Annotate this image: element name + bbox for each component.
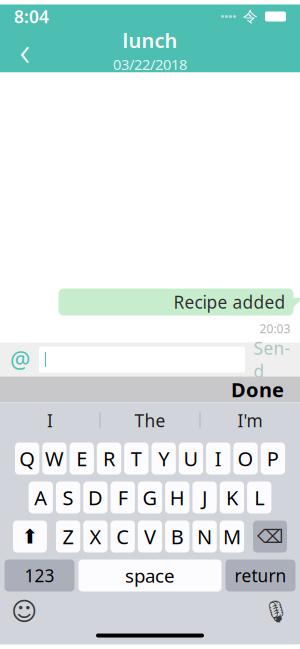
button[interactable]: J bbox=[192, 481, 217, 513]
staticText: The bbox=[134, 409, 165, 432]
button[interactable]: Y bbox=[151, 442, 176, 474]
button[interactable]: F bbox=[110, 481, 135, 513]
staticText: I bbox=[215, 445, 222, 472]
button[interactable]: I bbox=[206, 442, 230, 474]
button[interactable]: Z bbox=[56, 520, 80, 552]
staticText: Done bbox=[231, 376, 284, 403]
staticText: I'm bbox=[237, 409, 262, 432]
button[interactable]: W bbox=[42, 442, 67, 474]
staticText: Send bbox=[253, 336, 290, 382]
button[interactable]: A bbox=[29, 481, 53, 513]
button[interactable]: S bbox=[56, 481, 80, 513]
staticText: H bbox=[170, 484, 185, 511]
staticText: C bbox=[116, 523, 129, 550]
button[interactable]: X bbox=[83, 520, 107, 552]
button[interactable]: R bbox=[97, 442, 121, 474]
button[interactable]: E bbox=[70, 442, 94, 474]
staticText: W bbox=[45, 445, 64, 472]
staticText: K bbox=[226, 484, 238, 511]
button[interactable]: C bbox=[110, 520, 135, 552]
staticText: B bbox=[171, 523, 184, 550]
staticText: Y bbox=[158, 445, 169, 472]
staticText: 令 bbox=[243, 7, 258, 25]
button[interactable]: U bbox=[179, 442, 203, 474]
button[interactable]: K bbox=[220, 481, 244, 513]
button[interactable]: I'm bbox=[200, 402, 299, 438]
staticText: F bbox=[118, 484, 128, 511]
staticText: X bbox=[89, 523, 101, 550]
staticText: @ bbox=[10, 344, 30, 374]
button[interactable]: G bbox=[138, 481, 162, 513]
staticText: 03/22/2018 bbox=[113, 54, 187, 74]
staticText: U bbox=[183, 445, 198, 472]
button[interactable]: P bbox=[261, 442, 285, 474]
staticText: 20:03 bbox=[259, 321, 290, 336]
button[interactable]: L bbox=[247, 481, 271, 513]
staticText: E bbox=[76, 445, 87, 472]
button[interactable]: Dictation bbox=[262, 597, 290, 625]
button[interactable]: I bbox=[0, 402, 99, 438]
staticText: 🎙 bbox=[262, 599, 289, 624]
staticText: Q bbox=[19, 445, 35, 472]
button[interactable]: T bbox=[124, 442, 148, 474]
staticText: ⌫ bbox=[257, 526, 283, 547]
button[interactable]: V bbox=[138, 520, 162, 552]
staticText: Z bbox=[63, 523, 74, 550]
staticText: M bbox=[223, 523, 241, 550]
button[interactable]: N bbox=[192, 520, 217, 552]
staticText: O bbox=[238, 445, 254, 472]
button[interactable]: Shift bbox=[13, 520, 47, 552]
button[interactable]: 123 bbox=[4, 559, 74, 591]
staticText: ◤ bbox=[291, 294, 300, 310]
staticText: A bbox=[34, 484, 47, 511]
button[interactable]: B bbox=[165, 520, 189, 552]
staticText: 8:04 bbox=[14, 5, 49, 28]
staticText: L bbox=[254, 484, 264, 511]
button[interactable]: O bbox=[233, 442, 258, 474]
staticText: 123 bbox=[24, 564, 54, 587]
button[interactable]: space bbox=[78, 559, 221, 591]
staticText: P bbox=[267, 445, 279, 472]
button[interactable]: Mention bbox=[9, 346, 31, 372]
staticText: S bbox=[63, 484, 74, 511]
button[interactable]: Emoji bbox=[10, 597, 38, 625]
staticText: J bbox=[202, 484, 207, 511]
staticText: ☺ bbox=[11, 597, 37, 626]
staticText: return bbox=[234, 564, 286, 587]
button[interactable]: Send bbox=[253, 346, 291, 372]
button[interactable]: Delete bbox=[253, 520, 287, 552]
button[interactable]: H bbox=[165, 481, 189, 513]
button[interactable]: Done bbox=[223, 372, 292, 407]
staticText: Recipe added bbox=[173, 291, 285, 314]
staticText: G bbox=[142, 484, 157, 511]
staticText: V bbox=[144, 523, 156, 550]
staticText: N bbox=[197, 523, 212, 550]
staticText: ⬆ bbox=[21, 525, 38, 548]
button[interactable]: return bbox=[225, 559, 295, 591]
button[interactable]: Q bbox=[15, 442, 39, 474]
button[interactable]: Back bbox=[8, 33, 42, 67]
button[interactable]: D bbox=[83, 481, 107, 513]
staticText: ‹ bbox=[19, 24, 30, 77]
staticText: lunch bbox=[122, 27, 177, 54]
staticText: D bbox=[88, 484, 103, 511]
staticText: T bbox=[131, 445, 142, 472]
staticText: R bbox=[103, 445, 115, 472]
staticText: space bbox=[125, 563, 175, 588]
button[interactable]: M bbox=[220, 520, 244, 552]
staticText: I bbox=[47, 409, 53, 432]
button[interactable]: The bbox=[100, 402, 199, 438]
